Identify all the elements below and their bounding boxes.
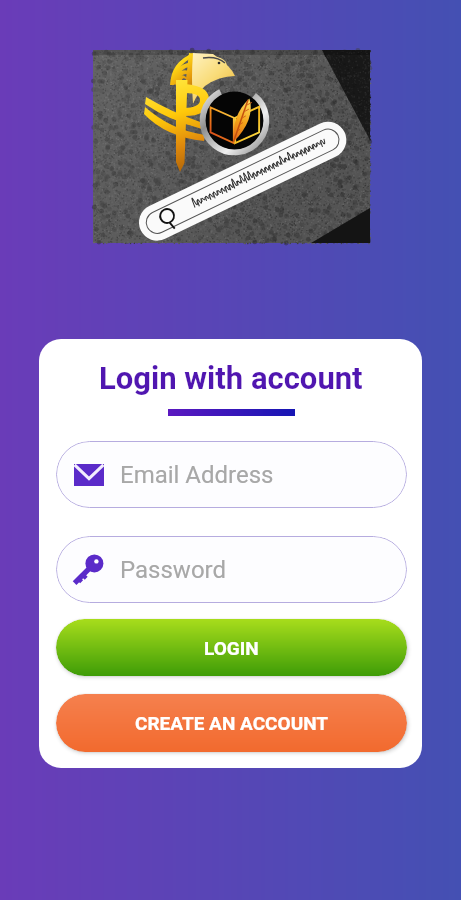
staticText: Email Address <box>120 461 274 489</box>
button[interactable]: Password <box>56 536 407 603</box>
button[interactable]: CREATE AN ACCOUNT <box>56 694 407 752</box>
button[interactable]: Email <box>56 441 407 508</box>
staticText: Password <box>120 556 227 584</box>
staticText: LOGIN <box>204 637 259 659</box>
staticText: CREATE AN ACCOUNT <box>135 712 329 734</box>
other: Email <box>74 464 104 486</box>
other: Password <box>72 553 106 587</box>
button[interactable]: LOGIN <box>56 619 407 676</box>
staticText: Login with account <box>99 360 363 396</box>
